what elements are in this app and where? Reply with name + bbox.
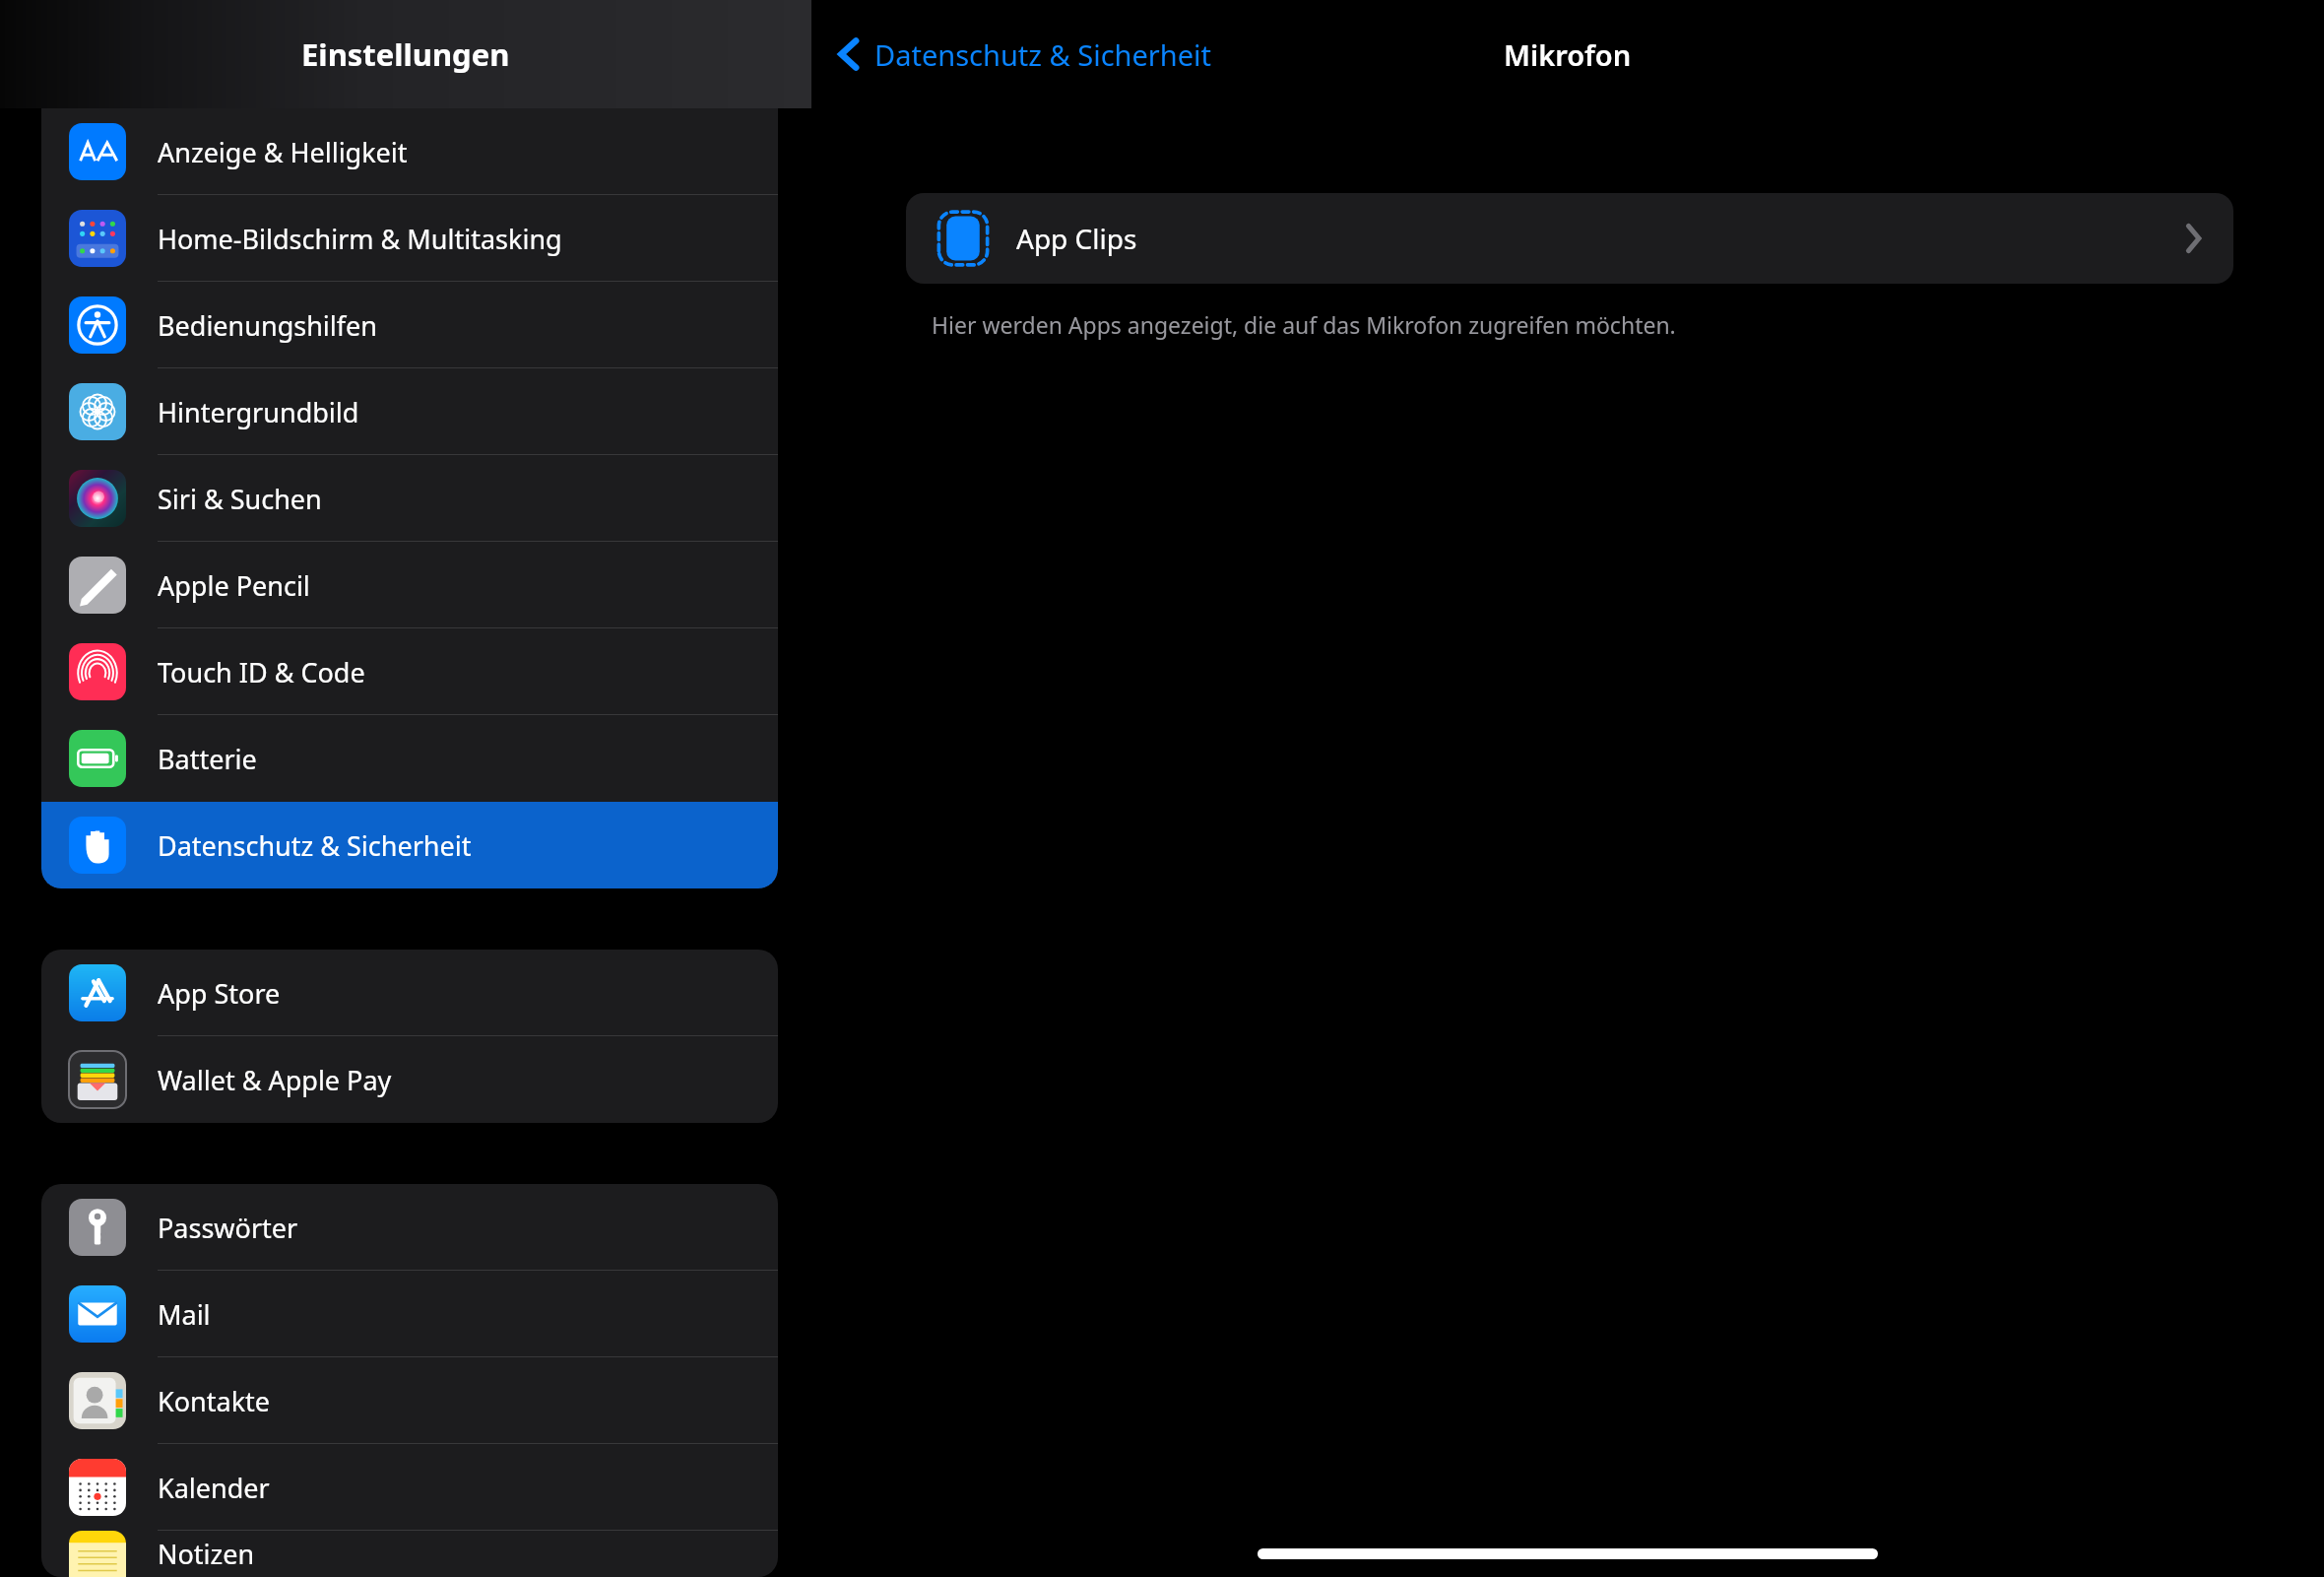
staticText: Mail xyxy=(158,1296,211,1333)
staticText: Datenschutz & Sicherheit xyxy=(158,827,472,864)
staticText: Wallet & Apple Pay xyxy=(158,1062,392,1098)
staticText: Kontakte xyxy=(158,1383,271,1419)
staticText: Hier werden Apps angezeigt, die auf das … xyxy=(932,309,1676,340)
staticText: App Clips xyxy=(1016,220,1137,257)
staticText: Datenschutz & Sicherheit xyxy=(874,35,1212,74)
staticText: Hintergrundbild xyxy=(158,394,359,430)
staticText: Notizen xyxy=(158,1536,255,1572)
button[interactable]: Touch ID & Code xyxy=(41,628,778,715)
button[interactable]: Apple Pencil xyxy=(41,542,778,628)
staticText: Bedienungshilfen xyxy=(158,307,377,344)
staticText: Home-Bildschirm & Multitasking xyxy=(158,221,562,257)
button[interactable]: Wallet & Apple Pay xyxy=(41,1036,778,1123)
button[interactable]: Batterie xyxy=(41,715,778,802)
button[interactable]: Notizen xyxy=(41,1531,778,1577)
staticText: Batterie xyxy=(158,741,257,777)
staticText: Passwörter xyxy=(158,1210,298,1246)
button[interactable]: Anzeige & Helligkeit xyxy=(41,108,778,195)
staticText: Touch ID & Code xyxy=(158,654,365,690)
button[interactable]: App Store xyxy=(41,950,778,1036)
other: Zurück xyxy=(837,34,861,74)
button[interactable]: Siri & Suchen xyxy=(41,455,778,542)
staticText: Mikrofon xyxy=(1504,35,1632,74)
button[interactable]: App Clips xyxy=(906,193,2233,284)
button[interactable]: Bedienungshilfen xyxy=(41,282,778,368)
button[interactable]: Kontakte xyxy=(41,1357,778,1444)
button[interactable]: Kalender xyxy=(41,1444,778,1531)
staticText: Anzeige & Helligkeit xyxy=(158,134,408,170)
button[interactable]: Datenschutz & Sicherheit xyxy=(41,802,778,888)
button[interactable]: Home-Bildschirm & Multitasking xyxy=(41,195,778,282)
button[interactable]: Hintergrundbild xyxy=(41,368,778,455)
staticText: Kalender xyxy=(158,1470,270,1506)
staticText: App Store xyxy=(158,975,281,1012)
button[interactable]: Mail xyxy=(41,1271,778,1357)
staticText: Siri & Suchen xyxy=(158,481,322,517)
staticText: Apple Pencil xyxy=(158,567,310,604)
button[interactable]: Passwörter xyxy=(41,1184,778,1271)
staticText: Einstellungen xyxy=(301,33,510,75)
button[interactable]: Zurück xyxy=(837,34,1212,74)
